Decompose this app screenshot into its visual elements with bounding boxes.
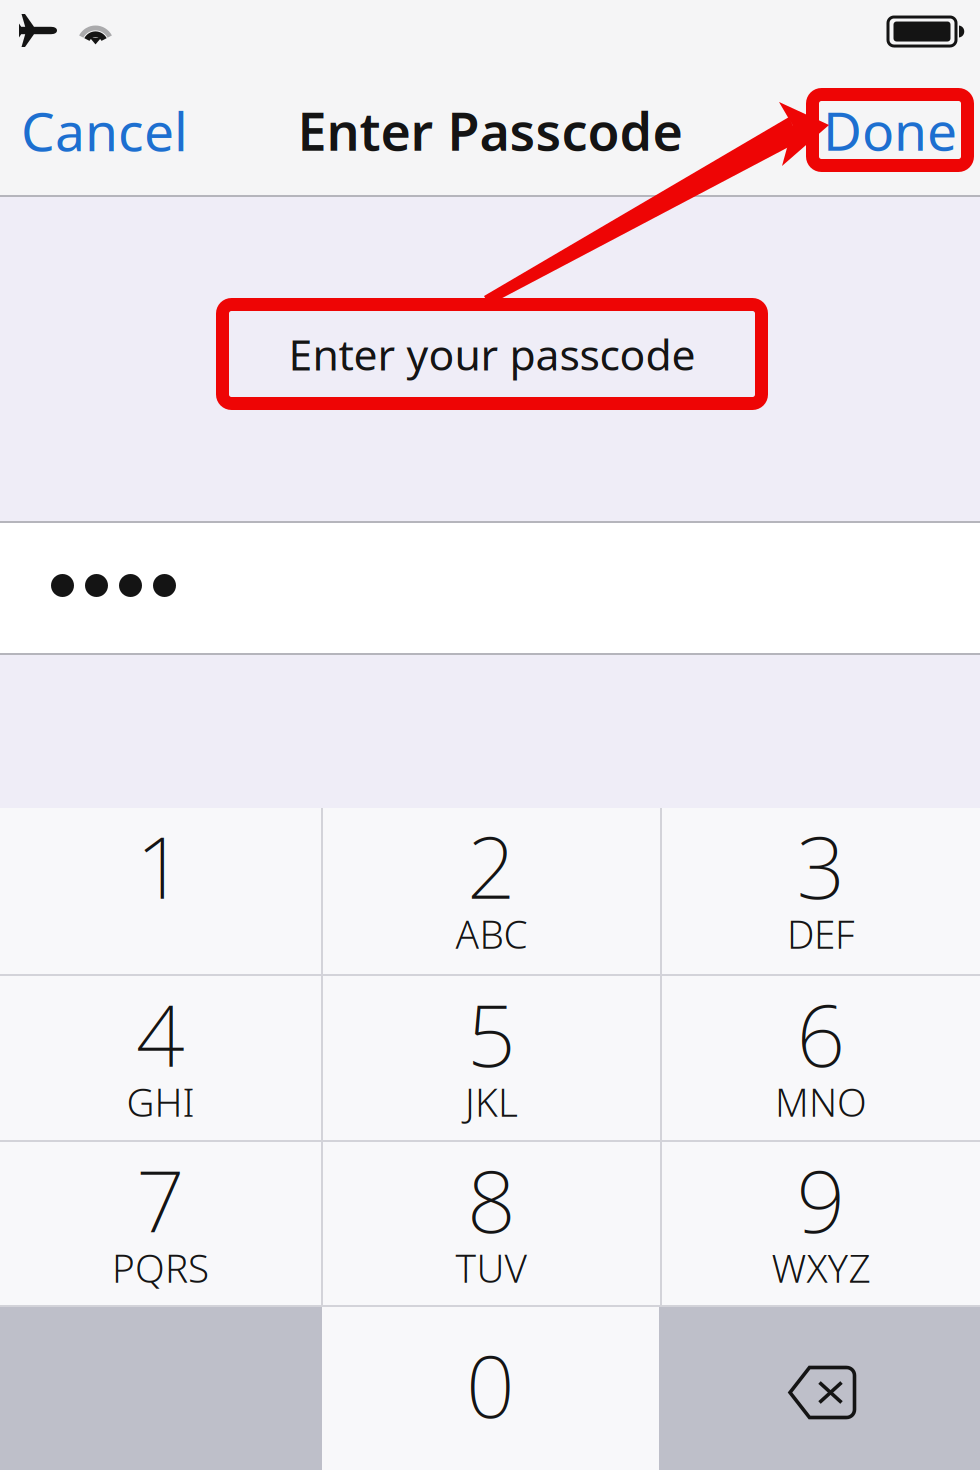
staticText: 7 xyxy=(136,1143,185,1256)
staticText: 6 xyxy=(796,977,845,1090)
staticText: Enter your passcode xyxy=(288,326,695,382)
staticText: 3 xyxy=(796,809,845,922)
button[interactable]: Delete xyxy=(659,1307,980,1470)
button[interactable]: 4 xyxy=(0,976,321,1140)
staticText: 9 xyxy=(796,1143,845,1256)
staticText: MNO xyxy=(775,1076,867,1127)
staticText: GHI xyxy=(126,1076,194,1127)
staticText: Enter Passcode xyxy=(297,96,682,165)
staticText: 2 xyxy=(467,809,516,922)
staticText: Done xyxy=(823,95,957,165)
staticText: ABC xyxy=(455,908,527,959)
button[interactable]: 6 xyxy=(662,976,980,1140)
staticText: TUV xyxy=(455,1242,527,1293)
button[interactable]: 9 xyxy=(662,1142,980,1305)
button[interactable]: 7 xyxy=(0,1142,321,1305)
button[interactable]: Done xyxy=(806,88,974,172)
staticText: JKL xyxy=(465,1076,518,1127)
button[interactable]: 3 xyxy=(662,808,980,974)
staticText: 4 xyxy=(136,977,185,1090)
button[interactable]: 5 xyxy=(323,976,660,1140)
staticText: DEF xyxy=(787,908,855,959)
button[interactable]: 8 xyxy=(323,1142,660,1305)
staticText: WXYZ xyxy=(771,1242,870,1293)
staticText: 5 xyxy=(467,977,516,1090)
button[interactable]: 1 xyxy=(0,808,321,974)
staticText: PQRS xyxy=(112,1242,209,1293)
staticText: 0 xyxy=(466,1328,515,1441)
button[interactable]: Cancel xyxy=(14,64,195,197)
staticText: 1 xyxy=(136,809,185,922)
button[interactable]: 2 xyxy=(323,808,660,974)
staticText: 8 xyxy=(467,1143,516,1256)
button[interactable]: 0 xyxy=(322,1307,659,1470)
staticText: Cancel xyxy=(21,95,188,166)
